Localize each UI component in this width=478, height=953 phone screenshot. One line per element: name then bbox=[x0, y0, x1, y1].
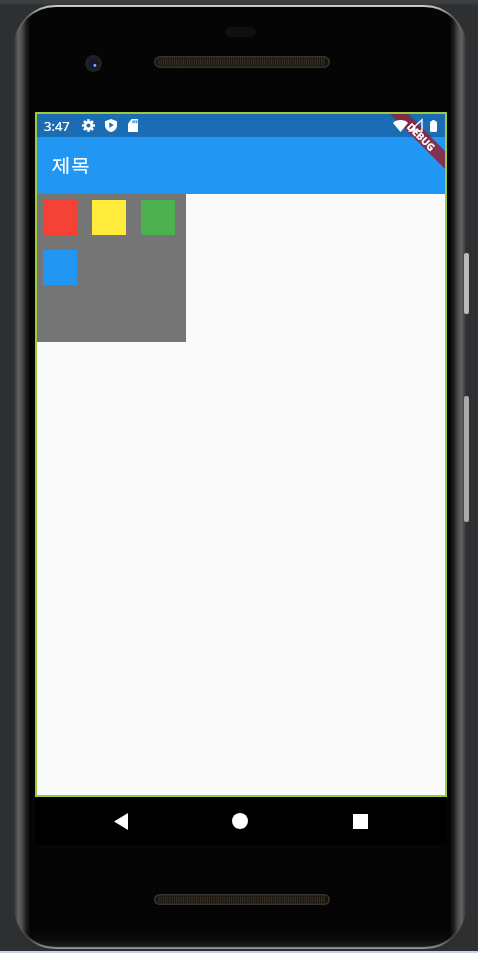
staticText: DEBUG bbox=[404, 120, 439, 154]
button[interactable]: 제목 bbox=[37, 137, 445, 194]
staticText: 제목 bbox=[52, 154, 90, 178]
button[interactable]: Recent apps bbox=[336, 797, 384, 845]
button[interactable]: Back bbox=[97, 797, 145, 845]
staticText: 3:47 bbox=[44, 117, 70, 135]
button[interactable]: Home bbox=[216, 797, 264, 845]
